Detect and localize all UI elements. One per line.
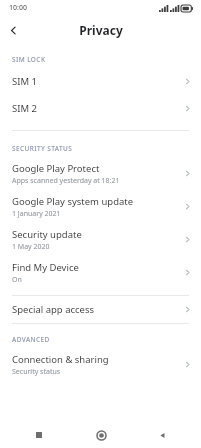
staticText: Find My Device [12, 261, 79, 274]
button[interactable]: SIM 1 [0, 68, 201, 95]
staticText: SIM 1 [12, 75, 184, 88]
button[interactable]: Google Play Protect [0, 157, 201, 190]
button[interactable]: SIM 2 [0, 95, 201, 122]
staticText: 10:00 [9, 3, 27, 13]
staticText: 1 May 2020 [12, 242, 50, 252]
staticText: SIM LOCK [12, 55, 46, 64]
button[interactable]: Back [151, 424, 173, 446]
staticText: Security status [12, 367, 61, 377]
staticText: Google Play system update [12, 195, 134, 208]
button[interactable]: Google Play system update [0, 190, 201, 223]
button[interactable]: Connection & sharing [0, 348, 201, 381]
button[interactable]: Special app access [0, 296, 201, 323]
button[interactable]: Home [90, 424, 112, 446]
staticText: Google Play Protect [12, 162, 100, 175]
button[interactable]: Recents [28, 424, 50, 446]
button[interactable]: Back [0, 17, 26, 43]
staticText: SIM 2 [12, 102, 184, 115]
staticText: 1 January 2021 [12, 209, 61, 219]
button[interactable]: Find My Device [0, 256, 201, 289]
staticText: SECURITY STATUS [12, 144, 73, 153]
staticText: On [12, 275, 22, 285]
staticText: Connection & sharing [12, 353, 109, 366]
staticText: ADVANCED [12, 335, 50, 344]
staticText: Privacy [79, 22, 123, 38]
staticText: Special app access [12, 303, 184, 316]
staticText: Apps scanned yesterday at 18:21 [12, 176, 120, 186]
staticText: Security update [12, 228, 82, 241]
button[interactable]: Security update [0, 223, 201, 256]
